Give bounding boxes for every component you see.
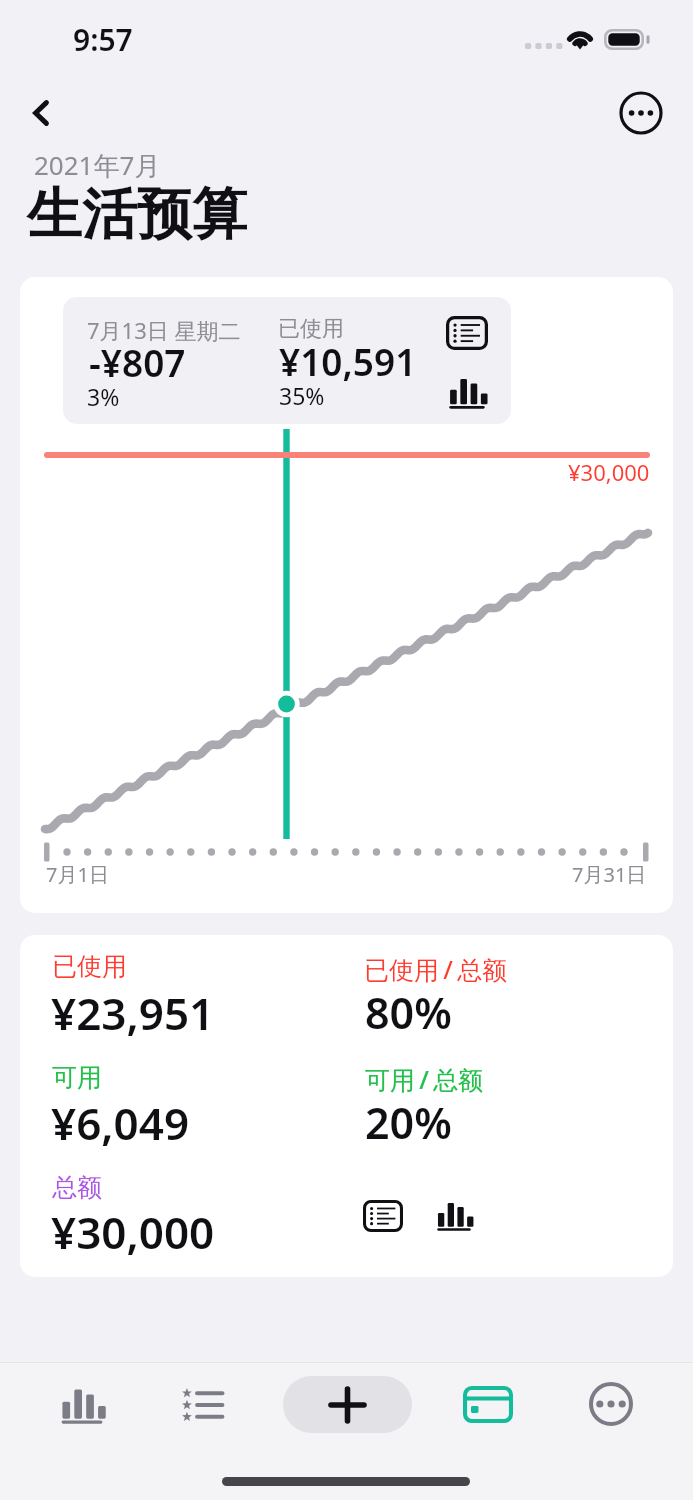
button[interactable]: More options	[617, 89, 665, 137]
staticText: ¥30,000	[568, 457, 650, 487]
button[interactable]: Chart view	[424, 1191, 484, 1241]
staticText: 9:57	[73, 19, 133, 60]
staticText: 已使用	[52, 951, 127, 982]
staticText: 2021年7月	[34, 147, 161, 183]
button[interactable]: List view	[353, 1191, 413, 1241]
staticText: ¥10,591	[279, 336, 417, 386]
button[interactable]: Add	[283, 1376, 412, 1433]
staticText: 20%	[365, 1093, 452, 1152]
staticText: 80%	[365, 983, 452, 1042]
staticText: ¥6,049	[51, 1093, 190, 1153]
staticText: 3%	[87, 381, 120, 412]
staticText: 可用	[52, 1062, 102, 1093]
staticText: 总额	[52, 1172, 102, 1203]
staticText: 35%	[279, 380, 325, 411]
staticText: 7月31日	[572, 861, 647, 888]
button[interactable]: More	[579, 1372, 643, 1436]
staticText: 7月1日	[46, 861, 109, 888]
staticText: -¥807	[89, 337, 186, 387]
button[interactable]: Cards	[456, 1376, 520, 1432]
button[interactable]: List view	[437, 306, 497, 360]
button[interactable]	[20, 277, 673, 913]
staticText: ¥23,951	[51, 983, 215, 1043]
button[interactable]: Chart view	[437, 366, 497, 420]
staticText: 可用 / 总额	[365, 1062, 483, 1096]
button[interactable]: Back	[17, 89, 65, 137]
staticText: 生活预算	[27, 180, 247, 249]
staticText: 已使用	[278, 315, 344, 343]
staticText: 已使用 / 总额	[364, 952, 507, 986]
staticText: 7月13日 星期二	[87, 315, 241, 345]
staticText: ¥30,000	[51, 1202, 215, 1262]
button[interactable]: Favorites list	[171, 1377, 235, 1433]
button[interactable]: Statistics	[50, 1377, 114, 1433]
button[interactable]	[20, 935, 673, 1277]
